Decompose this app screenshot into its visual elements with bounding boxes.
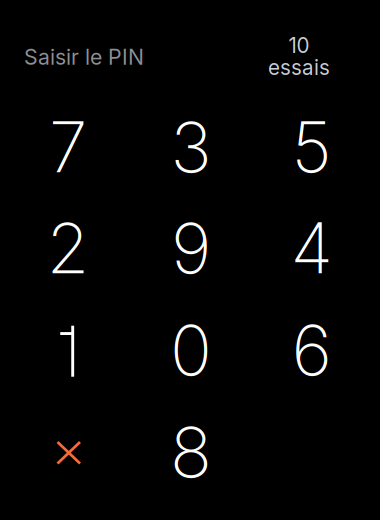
button[interactable]: 3 bbox=[129, 96, 252, 197]
button[interactable]: 4 bbox=[250, 197, 373, 298]
button[interactable]: 2 bbox=[6, 197, 129, 298]
staticText: 6 bbox=[291, 308, 331, 392]
button[interactable]: 9 bbox=[129, 197, 252, 298]
staticText: 4 bbox=[290, 206, 332, 290]
staticText: 2 bbox=[46, 206, 89, 290]
staticText: 8 bbox=[170, 410, 212, 494]
staticText: 0 bbox=[170, 308, 212, 392]
staticText: Saisir le PIN bbox=[24, 44, 144, 70]
button[interactable]: 1 bbox=[6, 299, 129, 400]
button[interactable]: 0 bbox=[129, 299, 252, 400]
staticText: 5 bbox=[291, 105, 331, 189]
button[interactable]: 8 bbox=[129, 401, 252, 502]
staticText: 9 bbox=[171, 206, 211, 290]
button[interactable]: 6 bbox=[250, 299, 373, 400]
button[interactable]: 5 bbox=[250, 96, 373, 197]
staticText: essais bbox=[268, 55, 330, 80]
staticText: 10 bbox=[288, 33, 309, 58]
staticText: 7 bbox=[49, 105, 87, 189]
button[interactable]: Delete bbox=[6, 401, 129, 502]
button[interactable]: 7 bbox=[6, 96, 129, 197]
staticText: 3 bbox=[170, 105, 211, 189]
